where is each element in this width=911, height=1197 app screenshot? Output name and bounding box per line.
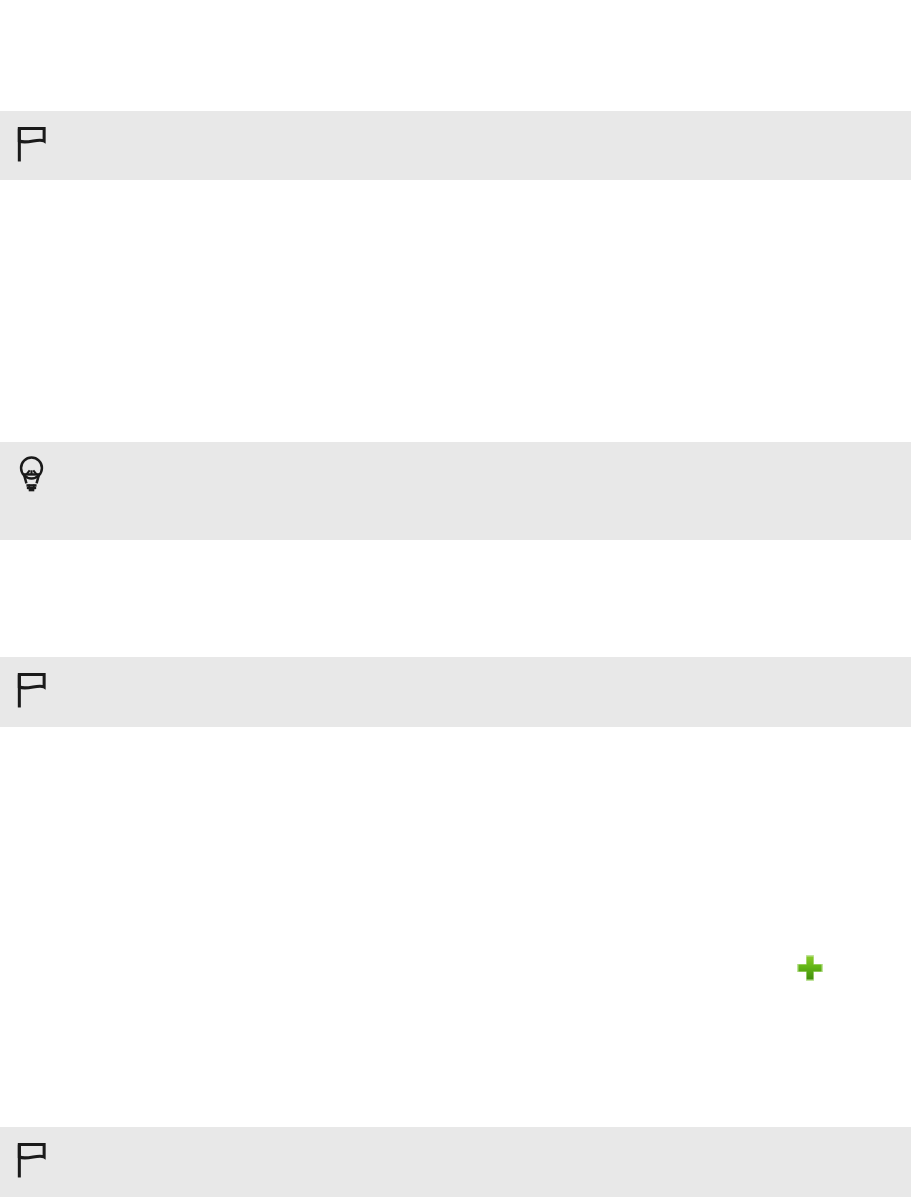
button[interactable]: Tip [0,442,911,540]
button[interactable]: Add [797,955,823,981]
button[interactable]: Flag [0,111,911,180]
button[interactable]: Flag [0,1127,911,1197]
button[interactable]: Flag [0,657,911,727]
